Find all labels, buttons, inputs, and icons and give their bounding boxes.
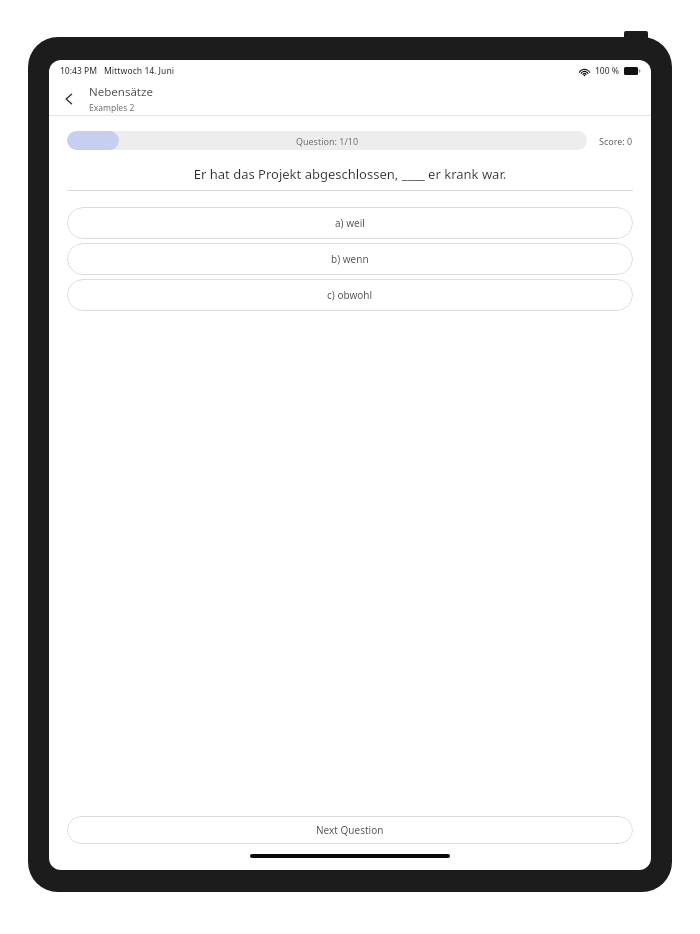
staticText: b) wenn [331, 252, 369, 266]
staticText: c) obwohl [327, 288, 373, 302]
staticText: 100 % [595, 65, 620, 77]
staticText: Mittwoch 14. Juni [104, 65, 175, 77]
staticText: Examples 2 [89, 102, 135, 114]
button[interactable]: a) weil [67, 207, 633, 239]
staticText: a) weil [335, 216, 365, 230]
staticText: Score: 0 [599, 135, 633, 147]
staticText: Question: 1/10 [67, 135, 587, 147]
button[interactable]: b) wenn [67, 243, 633, 275]
button[interactable]: Back [49, 82, 89, 115]
staticText: Next Question [316, 823, 384, 837]
staticText: Nebensätze [89, 84, 153, 100]
button[interactable]: c) obwohl [67, 279, 633, 311]
button[interactable]: Next Question [67, 816, 633, 844]
staticText: 10:43 PM [60, 65, 97, 77]
staticText: Er hat das Projekt abgeschlossen, ____ e… [67, 165, 633, 183]
